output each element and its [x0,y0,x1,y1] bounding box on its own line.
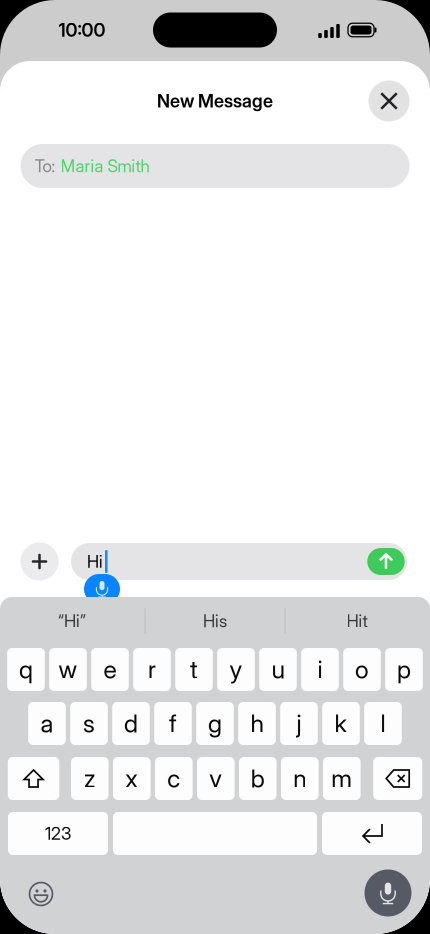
staticText: w [58,655,77,684]
button[interactable]: h [238,702,276,745]
button[interactable]: Delete [373,757,422,800]
button[interactable]: w [49,648,87,691]
button[interactable]: Return [322,812,422,855]
staticText: c [167,764,180,793]
button[interactable]: His [146,600,284,642]
button[interactable]: i [301,648,339,691]
button[interactable]: “Hi” [0,600,143,642]
button[interactable]: v [197,757,235,800]
button[interactable]: z [71,757,109,800]
staticText: z [84,764,96,793]
button[interactable]: u [259,648,297,691]
staticText: i [317,655,322,684]
staticText: v [209,764,222,793]
button[interactable]: c [155,757,193,800]
button[interactable]: To: [20,144,409,188]
staticText: f [169,709,177,738]
button[interactable]: r [133,648,171,691]
staticText: r [148,655,156,684]
staticText: To: [34,156,55,176]
button[interactable]: j [280,702,318,745]
staticText: His [203,610,227,631]
button[interactable]: q [7,648,45,691]
staticText: b [251,764,265,793]
button[interactable]: f [154,702,192,745]
staticText: Maria Smith [60,156,149,176]
button[interactable]: Emoji [21,874,61,914]
staticText: o [355,655,369,684]
staticText: s [83,709,95,738]
button[interactable]: Shift [8,757,59,800]
button[interactable]: n [281,757,319,800]
button[interactable]: p [385,648,423,691]
button[interactable]: m [323,757,361,800]
staticText: q [19,655,33,684]
staticText: a [40,709,53,738]
button[interactable]: Hit [285,600,428,642]
staticText: t [190,655,198,684]
staticText: y [229,655,242,684]
button[interactable]: a [28,702,66,745]
staticText: Hit [346,610,367,631]
button[interactable]: x [113,757,151,800]
button[interactable]: s [70,702,108,745]
staticText: g [208,709,222,738]
button[interactable]: l [364,702,402,745]
button[interactable]: e [91,648,129,691]
button[interactable]: k [322,702,360,745]
staticText: New Message [157,90,273,112]
button[interactable]: Dictation [364,869,411,916]
staticText: u [271,655,284,684]
staticText: m [331,764,352,793]
staticText: d [124,709,138,738]
staticText: l [380,709,385,738]
staticText: p [397,655,411,684]
staticText: n [293,764,306,793]
staticText: k [334,709,347,738]
button[interactable]: Send [367,548,405,575]
staticText: Hi [87,551,103,572]
button[interactable]: t [175,648,213,691]
staticText: 10:00 [58,19,105,41]
button[interactable]: b [239,757,277,800]
staticText: h [250,709,263,738]
button[interactable]: g [196,702,234,745]
button[interactable]: Close [367,79,411,123]
staticText: 123 [45,823,71,844]
staticText: x [125,764,138,793]
button[interactable]: Add attachment [17,539,61,583]
staticText: j [296,709,301,738]
button[interactable]: o [343,648,381,691]
staticText: “Hi” [58,610,86,631]
staticText: e [103,655,116,684]
button[interactable]: d [112,702,150,745]
button[interactable]: y [217,648,255,691]
button[interactable]: 123 [8,812,108,855]
